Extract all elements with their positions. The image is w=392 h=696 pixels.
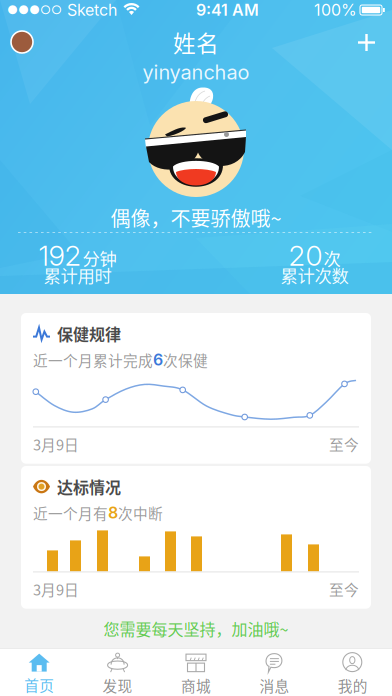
staticText: 8 <box>108 503 118 522</box>
staticText: 至今 <box>329 578 359 600</box>
button[interactable]: 发现 <box>78 648 157 696</box>
staticText: 192 <box>38 239 81 272</box>
button[interactable]: 消息 <box>235 648 314 696</box>
staticText: 首页 <box>24 674 54 695</box>
staticText: 6 <box>153 350 163 369</box>
staticText: 消息 <box>259 675 289 696</box>
staticText: 保健规律 <box>57 322 121 345</box>
staticText: 次中断 <box>118 502 163 523</box>
button[interactable]: Profile <box>11 31 33 53</box>
staticText: ●●● <box>7 3 40 17</box>
staticText: 您需要每天坚持，加油哦~ <box>103 617 288 640</box>
staticText: 近一个月累计完成 <box>33 349 153 370</box>
staticText: Sketch <box>62 0 122 20</box>
staticText: 3月9日 <box>33 433 79 455</box>
staticText: 分钟 <box>82 245 116 270</box>
staticText: 我的 <box>338 675 368 696</box>
staticText: 发现 <box>103 675 133 696</box>
staticText: yinyanchao <box>142 60 249 84</box>
staticText: 商城 <box>181 675 211 696</box>
staticText: 达标情况 <box>57 475 121 498</box>
button[interactable]: 商城 <box>157 648 235 696</box>
staticText: 次保健 <box>163 349 208 370</box>
staticText: 累计用时 <box>43 262 111 288</box>
staticText: 3月9日 <box>33 578 79 600</box>
button[interactable]: Add <box>357 33 376 52</box>
button[interactable]: 我的 <box>314 648 392 696</box>
staticText: 姓名 <box>173 26 219 58</box>
staticText: 近一个月有 <box>33 502 108 523</box>
staticText: 偶像，不要骄傲哦~ <box>110 203 281 232</box>
staticText: 9:41 AM <box>196 0 259 20</box>
staticText: ○○ <box>40 3 62 17</box>
button[interactable]: 首页 <box>0 648 78 696</box>
staticText: 累计次数 <box>280 262 348 288</box>
staticText: 100% <box>314 0 357 20</box>
staticText: 至今 <box>329 433 359 455</box>
staticText: 20 <box>288 239 322 272</box>
staticText: 次 <box>323 245 340 270</box>
